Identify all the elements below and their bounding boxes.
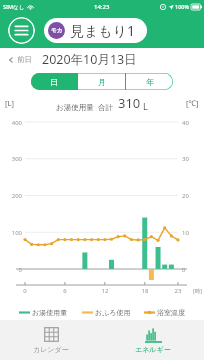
staticText: 0: [19, 287, 31, 295]
staticText: 18: [139, 287, 151, 295]
staticText: 310: [118, 94, 141, 112]
button[interactable]: 前日: [5, 52, 34, 67]
button[interactable]: 月: [78, 73, 125, 90]
staticText: 40: [182, 119, 202, 127]
staticText: 200: [0, 192, 22, 200]
staticText: L: [143, 100, 148, 112]
button[interactable]: エネルギー: [102, 320, 204, 360]
staticText: 0: [182, 266, 202, 274]
staticText: 年: [146, 77, 154, 87]
staticText: [時]: [193, 287, 203, 295]
staticText: 100: [0, 229, 22, 237]
staticText: モカ: [51, 27, 63, 34]
staticText: 見まもり1: [70, 21, 135, 40]
staticText: SIMなし: [3, 3, 25, 11]
staticText: [℃]: [186, 98, 199, 108]
button[interactable]: カレンダー: [0, 320, 102, 360]
staticText: 23: [172, 287, 184, 295]
staticText: 浴室温度: [157, 308, 185, 317]
staticText: 20: [182, 192, 202, 200]
staticText: お湯使用量: [32, 308, 68, 317]
staticText: 月: [98, 77, 106, 87]
staticText: おふろ使用: [95, 308, 131, 317]
button[interactable]: 年: [126, 73, 173, 90]
staticText: 6: [59, 287, 71, 295]
staticText: 10: [182, 229, 202, 237]
button[interactable]: Menu: [8, 17, 35, 44]
staticText: 400: [0, 119, 22, 127]
staticText: 前日: [17, 55, 32, 64]
staticText: 300: [0, 155, 22, 163]
staticText: 12: [99, 287, 111, 295]
staticText: 14:23: [94, 3, 110, 11]
staticText: 100%: [175, 3, 190, 10]
staticText: [L]: [5, 98, 14, 108]
button[interactable]: モカ: [44, 18, 147, 43]
staticText: エネルギー: [135, 345, 171, 354]
staticText: お湯使用量: [56, 103, 94, 112]
staticText: 30: [182, 155, 202, 163]
button[interactable]: 日: [31, 73, 77, 90]
staticText: 合計: [98, 103, 113, 112]
staticText: 0: [0, 266, 22, 274]
staticText: カレンダー: [33, 345, 69, 354]
staticText: 2020年10月13日: [42, 51, 137, 68]
staticText: 日: [50, 77, 58, 87]
